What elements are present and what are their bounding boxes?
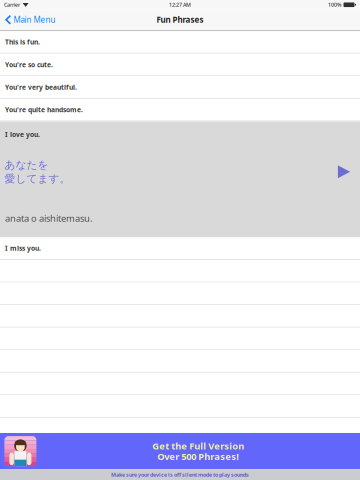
- staticText: あなたを: [4, 158, 48, 171]
- staticText: You're so cute.: [5, 60, 53, 69]
- staticText: Make sure your device is off silent mode…: [111, 471, 249, 478]
- staticText: I love you.: [5, 130, 40, 139]
- staticText: Get the Full Version: [152, 440, 244, 452]
- button[interactable]: You're quite handsome.: [0, 99, 360, 121]
- staticText: Over 500 Phrases!: [157, 450, 239, 463]
- button[interactable]: Main Menu: [0, 9, 61, 30]
- staticText: 愛してます。: [4, 172, 70, 185]
- button[interactable]: You're so cute.: [0, 54, 360, 76]
- staticText: You're quite handsome.: [5, 105, 83, 114]
- staticText: Carrier: [4, 1, 20, 8]
- button[interactable]: I love you.: [0, 121, 360, 237]
- button[interactable]: Get the Full Version: [0, 433, 360, 469]
- staticText: 12:27 AM: [169, 1, 191, 8]
- staticText: Fun Phrases: [156, 14, 203, 25]
- button[interactable]: You're very beautiful.: [0, 76, 360, 99]
- staticText: 100%: [328, 1, 342, 8]
- staticText: You're very beautiful.: [5, 83, 77, 92]
- staticText: Main Menu: [13, 14, 55, 25]
- button[interactable]: I miss you.: [0, 237, 360, 260]
- staticText: I miss you.: [5, 244, 41, 253]
- button[interactable]: This is fun.: [0, 31, 360, 54]
- staticText: anata o aishitemasu.: [5, 212, 93, 224]
- staticText: This is fun.: [5, 38, 40, 46]
